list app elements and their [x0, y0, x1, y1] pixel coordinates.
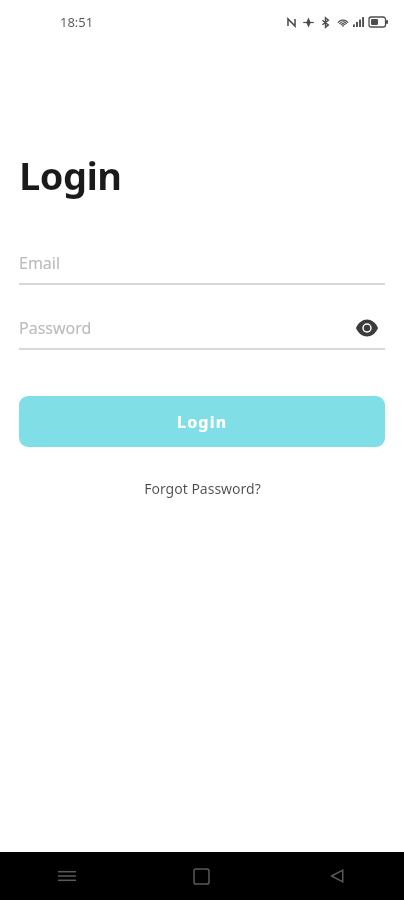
staticText: Password — [19, 317, 92, 339]
button[interactable]: Home — [134, 852, 269, 900]
staticText: Email — [19, 252, 61, 274]
staticText: Forgot Password? — [144, 479, 261, 498]
button[interactable]: Back — [269, 852, 404, 900]
staticText: Login — [19, 149, 122, 201]
button[interactable]: Forgot Password? — [132, 475, 273, 502]
staticText: 18:51 — [60, 13, 94, 31]
button[interactable]: Password — [19, 308, 385, 348]
button[interactable]: Recent apps — [0, 852, 134, 900]
staticText: Login — [177, 411, 228, 433]
button[interactable]: Show password — [349, 310, 385, 346]
button[interactable]: Email — [19, 243, 385, 283]
button[interactable]: Login — [19, 396, 385, 447]
